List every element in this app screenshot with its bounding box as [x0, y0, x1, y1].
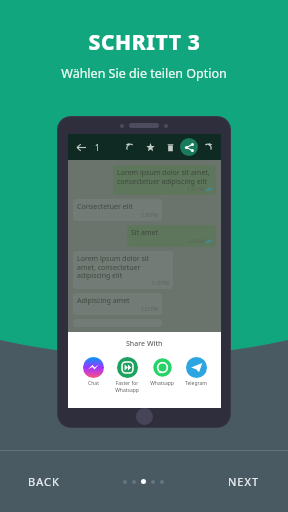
button[interactable]: Consectetuer elit	[73, 199, 162, 221]
staticText: 1	[95, 142, 100, 153]
button[interactable]: Adipiscing amet	[73, 293, 162, 315]
staticText: 5:20 PM	[187, 186, 204, 192]
button[interactable]: Star	[142, 139, 158, 155]
staticText: Wählen Sie die teilen Option	[61, 65, 227, 82]
button[interactable]: Delete	[162, 139, 178, 155]
button[interactable]: Sit amet	[127, 225, 216, 247]
staticText: 5:20 PM	[187, 238, 204, 244]
staticText: 5:22 PM	[141, 306, 158, 312]
button[interactable]: NEXT	[222, 468, 266, 495]
staticText: Chat	[88, 380, 99, 387]
button[interactable]: Reply	[122, 139, 138, 155]
staticText: Sit amet	[131, 228, 158, 238]
staticText: NEXT	[228, 474, 260, 489]
button[interactable]: Back	[73, 139, 89, 155]
staticText: 5:18 PM	[141, 212, 158, 218]
staticText: Lorem ipsum dolor sit amet, consectetuer…	[77, 254, 169, 280]
button[interactable]: Faster for Whatsapp	[111, 357, 143, 393]
staticText: Consectetuer elit	[77, 202, 133, 212]
button[interactable]: Lorem ipsum dolor sit amet, consectetuer…	[73, 251, 173, 289]
button[interactable]: Share	[180, 138, 198, 156]
staticText: SCHRITT 3	[88, 28, 201, 57]
button[interactable]: Whatsapp	[146, 357, 178, 387]
button[interactable]: BACK	[22, 468, 66, 495]
staticText: Whatsapp	[150, 380, 174, 387]
button[interactable]: Forward	[200, 139, 216, 155]
staticText: 5:18 PM	[152, 280, 169, 286]
staticText: Lorem ipsum dolor sit amet, consectetuer…	[117, 168, 212, 186]
staticText: Telegram	[185, 380, 207, 387]
staticText: Faster for Whatsapp	[115, 380, 139, 393]
button[interactable]: Telegram	[180, 357, 212, 387]
button[interactable]: Lorem ipsum dolor sit amet, consectetuer…	[113, 165, 216, 195]
staticText: Share With	[126, 339, 163, 349]
button[interactable]: Chat	[77, 357, 109, 387]
staticText: Adipiscing amet	[77, 296, 130, 306]
staticText: BACK	[28, 474, 60, 489]
